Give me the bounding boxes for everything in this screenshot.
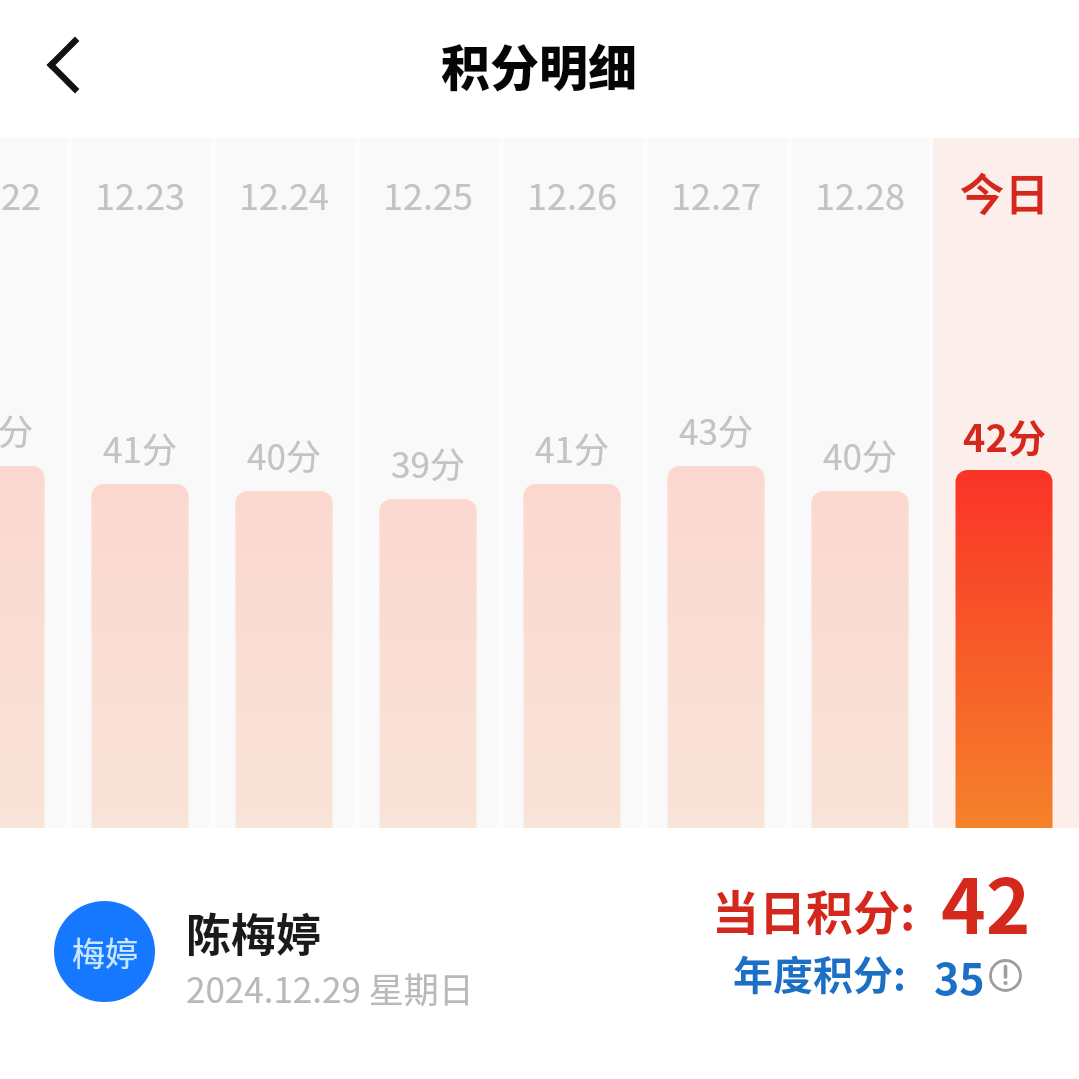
staticText: 12.23 bbox=[95, 168, 185, 220]
staticText: 43分 bbox=[0, 404, 33, 455]
button[interactable]: 今日 42分 bbox=[932, 138, 1076, 828]
staticText: 40分 bbox=[823, 429, 897, 480]
staticText: 12.28 bbox=[815, 168, 905, 220]
staticText: 当日积分: bbox=[712, 875, 916, 943]
staticText: 42 bbox=[941, 846, 1031, 956]
button[interactable]: 12.23 41分 bbox=[68, 138, 212, 828]
staticText: 陈梅婷 bbox=[186, 900, 322, 965]
button[interactable]: Back bbox=[18, 24, 108, 114]
staticText: 12.22 bbox=[0, 168, 41, 220]
staticText: 12.25 bbox=[383, 168, 473, 220]
staticText: 41分 bbox=[103, 422, 177, 473]
staticText: 42分 bbox=[963, 408, 1046, 463]
button[interactable]: 12.24 40分 bbox=[212, 138, 356, 828]
button[interactable]: 12.22 43分 bbox=[0, 138, 68, 828]
button[interactable]: 12.27 43分 bbox=[644, 138, 788, 828]
staticText: 39分 bbox=[391, 437, 465, 488]
staticText: 43分 bbox=[679, 404, 753, 455]
staticText: 41分 bbox=[535, 422, 609, 473]
button[interactable]: Annual points info bbox=[988, 958, 1023, 993]
staticText: 年度积分: bbox=[733, 944, 906, 1002]
staticText: 梅婷 bbox=[72, 928, 138, 976]
staticText: 35 bbox=[934, 945, 985, 1007]
staticText: 积分明细 bbox=[441, 29, 638, 100]
staticText: 12.27 bbox=[671, 168, 761, 220]
staticText: 今日 bbox=[959, 159, 1050, 224]
staticText: 12.24 bbox=[239, 168, 329, 220]
staticText: 12.26 bbox=[527, 168, 617, 220]
button[interactable]: 陈梅婷 2024.12.29 星期日 bbox=[40, 880, 510, 1022]
staticText: 40分 bbox=[247, 429, 321, 480]
button[interactable]: 12.25 39分 bbox=[356, 138, 500, 828]
staticText: 2024.12.29 星期日 bbox=[186, 962, 474, 1013]
button[interactable]: 12.28 40分 bbox=[788, 138, 932, 828]
button[interactable]: 12.26 41分 bbox=[500, 138, 644, 828]
